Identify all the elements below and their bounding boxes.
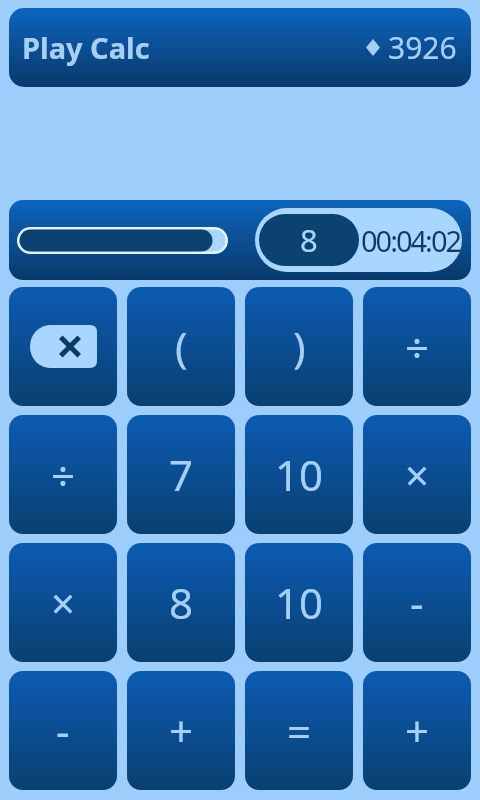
staticText: 7 [169,446,194,503]
staticText: × [51,574,76,631]
button[interactable]: + [127,671,235,790]
button[interactable]: 8 [127,543,235,662]
staticText: ( [175,318,188,375]
staticText: 3926 [388,27,457,68]
button[interactable]: = [245,671,353,790]
staticText: 10 [275,574,324,631]
button[interactable]: × [363,415,471,534]
staticText: ÷ [405,318,430,375]
button[interactable]: + [363,671,471,790]
staticText: 10 [275,446,324,503]
button[interactable]: - [9,671,117,790]
staticText: 8 [169,574,194,631]
button[interactable]: × [9,543,117,662]
button[interactable]: Play Calc [9,8,471,87]
staticText: 00:04:02 [361,221,461,260]
button[interactable]: - [363,543,471,662]
staticText: ÷ [51,446,76,503]
staticText: + [169,702,194,759]
button[interactable]: ÷ [363,287,471,406]
button[interactable] [9,287,117,406]
staticText: ) [293,318,306,375]
staticText: + [405,702,430,759]
button[interactable]: ÷ [9,415,117,534]
button[interactable]: 10 [245,415,353,534]
staticText: 8 [300,219,318,261]
button[interactable]: 10 [245,543,353,662]
staticText: × [405,446,430,503]
staticText: = [287,702,312,759]
staticText: Play Calc [22,28,150,67]
button[interactable]: 7 [127,415,235,534]
button[interactable]: ) [245,287,353,406]
staticText: - [56,702,70,759]
button[interactable]: ( [127,287,235,406]
staticText: - [410,574,424,631]
